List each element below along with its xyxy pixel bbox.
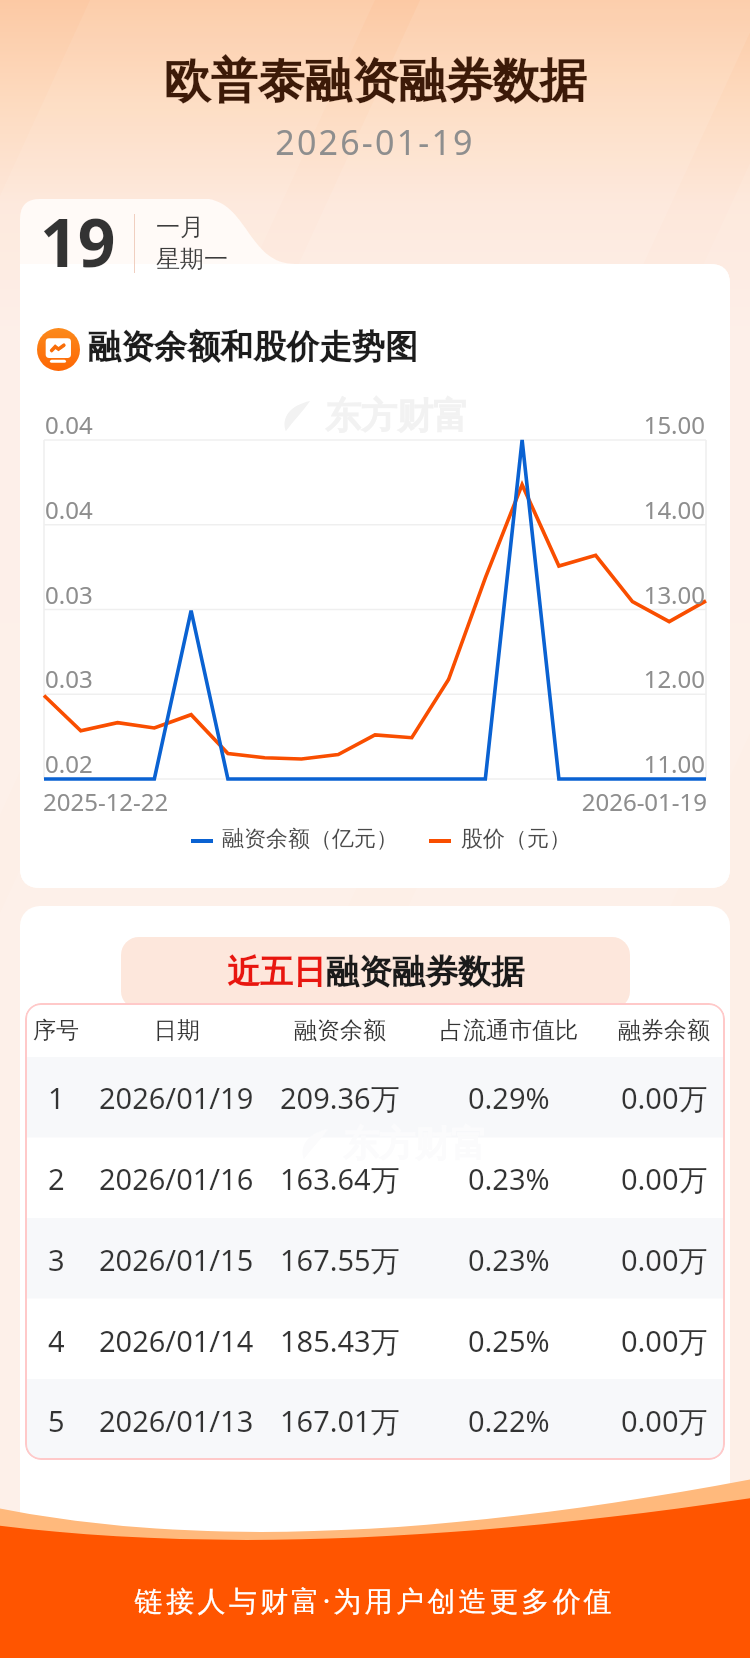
staticText: 2026/01/15 bbox=[99, 1240, 254, 1279]
staticText: 融资余额（亿元） bbox=[222, 825, 398, 853]
staticText: 融资融券数据 bbox=[326, 951, 524, 993]
staticText: 融资余额和股价走势图 bbox=[88, 326, 418, 368]
staticText: 0.23% bbox=[468, 1159, 550, 1198]
staticText: 近五日 bbox=[227, 951, 326, 993]
staticText: 2026/01/19 bbox=[99, 1078, 254, 1117]
staticText: 185.43万 bbox=[280, 1321, 400, 1361]
staticText: 一月 bbox=[156, 212, 204, 242]
staticText: 0.22% bbox=[468, 1401, 550, 1440]
staticText: 2026/01/13 bbox=[99, 1401, 254, 1440]
staticText: 11.00 bbox=[621, 747, 705, 780]
staticText: 融资余额 bbox=[294, 1016, 386, 1045]
staticText: 0.04 bbox=[45, 408, 93, 441]
staticText: 14.00 bbox=[621, 493, 705, 526]
staticText: 0.03 bbox=[45, 578, 93, 611]
staticText: 2026-01-19 bbox=[0, 119, 750, 165]
staticText: 0.00万 bbox=[621, 1240, 708, 1280]
staticText: 2 bbox=[48, 1159, 65, 1198]
staticText: 5 bbox=[48, 1401, 65, 1440]
staticText: 0.00万 bbox=[621, 1159, 708, 1199]
staticText: 0.23% bbox=[468, 1240, 550, 1279]
staticText: 19 bbox=[40, 196, 116, 286]
staticText: 2026/01/14 bbox=[99, 1321, 254, 1360]
staticText: 209.36万 bbox=[280, 1078, 400, 1118]
staticText: 0.25% bbox=[468, 1321, 550, 1360]
staticText: 163.64万 bbox=[280, 1159, 400, 1199]
staticText: 融券余额 bbox=[618, 1016, 710, 1045]
staticText: 欧普泰融资融券数据 bbox=[0, 52, 750, 111]
staticText: 2026/01/16 bbox=[99, 1159, 254, 1198]
staticText: 3 bbox=[48, 1240, 65, 1279]
staticText: 2025-12-22 bbox=[43, 785, 169, 818]
staticText: 股价（元） bbox=[461, 825, 571, 853]
staticText: 15.00 bbox=[621, 408, 705, 441]
staticText: 2026-01-19 bbox=[506, 785, 707, 818]
staticText: 4 bbox=[48, 1321, 65, 1360]
staticText: 0.03 bbox=[45, 662, 93, 695]
staticText: 13.00 bbox=[621, 578, 705, 611]
staticText: 占流通市值比 bbox=[440, 1016, 578, 1045]
staticText: 0.00万 bbox=[621, 1321, 708, 1361]
staticText: 星期一 bbox=[156, 244, 228, 274]
staticText: 167.55万 bbox=[280, 1240, 400, 1280]
staticText: 序号 bbox=[33, 1016, 79, 1045]
staticText: 0.00万 bbox=[621, 1078, 708, 1118]
staticText: 1 bbox=[48, 1078, 65, 1117]
staticText: 0.02 bbox=[45, 747, 93, 780]
staticText: 链接人与财富·为用户创造更多价值 bbox=[0, 1581, 750, 1619]
staticText: 0.29% bbox=[468, 1078, 550, 1117]
staticText: 东方财富 bbox=[325, 393, 469, 438]
staticText: 167.01万 bbox=[280, 1401, 400, 1441]
staticText: 日期 bbox=[154, 1016, 200, 1045]
staticText: 0.04 bbox=[45, 493, 93, 526]
staticText: 0.00万 bbox=[621, 1401, 708, 1441]
staticText: 12.00 bbox=[621, 662, 705, 695]
